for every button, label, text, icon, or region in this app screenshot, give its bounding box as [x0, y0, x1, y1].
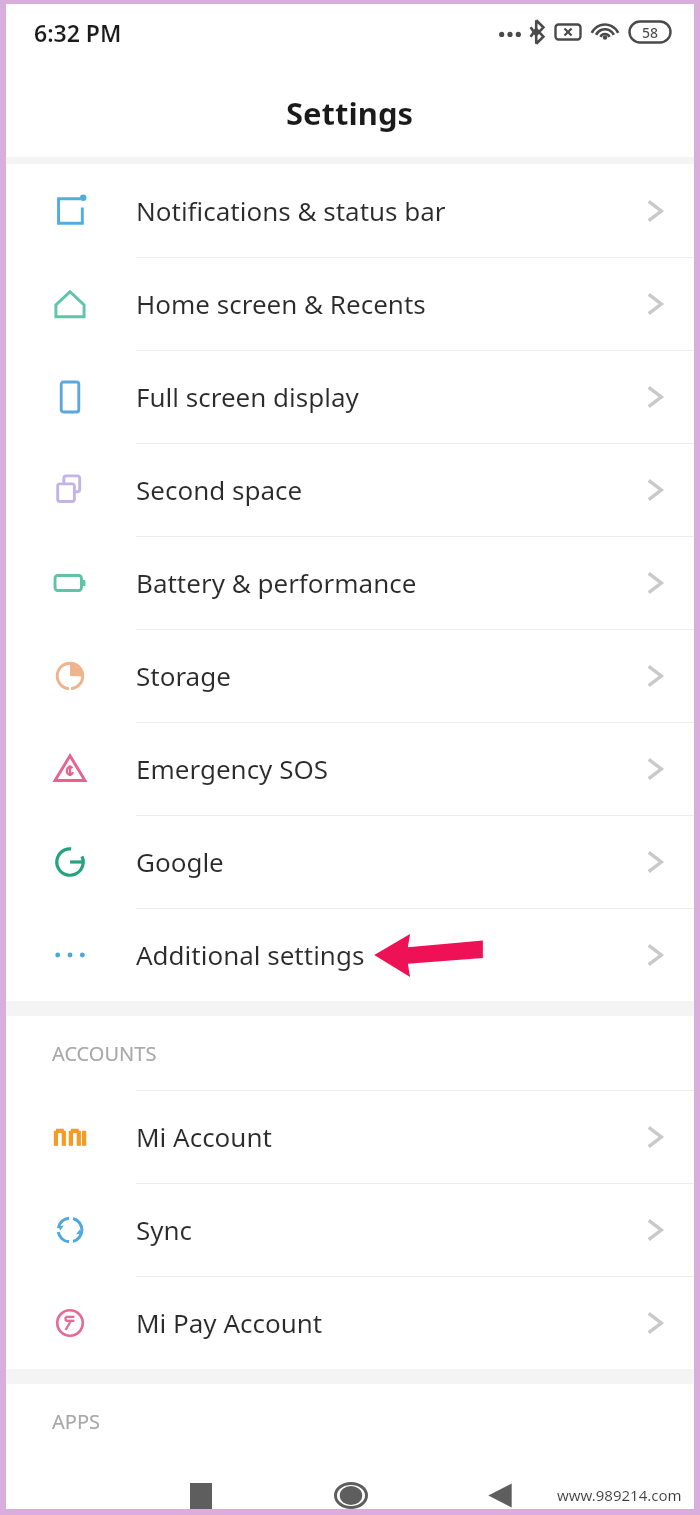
- button[interactable]: Home: [276, 1482, 425, 1509]
- button[interactable]: Notifications & status bar: [6, 164, 694, 257]
- staticText: Battery & performance: [136, 565, 417, 600]
- staticText: Emergency SOS: [136, 751, 328, 786]
- staticText: Home screen & Recents: [136, 286, 426, 321]
- staticText: Sync: [136, 1212, 193, 1247]
- staticText: Settings: [286, 92, 414, 134]
- staticText: APPS: [52, 1408, 100, 1435]
- button[interactable]: Battery & performance: [6, 536, 694, 629]
- button[interactable]: Emergency SOS: [6, 722, 694, 815]
- button[interactable]: Storage: [6, 629, 694, 722]
- staticText: Full screen display: [136, 379, 359, 414]
- staticText: Notifications & status bar: [136, 193, 446, 228]
- button[interactable]: Google: [6, 815, 694, 908]
- staticText: Additional settings: [136, 937, 365, 972]
- staticText: Mi Pay Account: [136, 1305, 323, 1340]
- button[interactable]: Back: [425, 1482, 574, 1509]
- staticText: Google: [136, 844, 224, 879]
- staticText: 58: [642, 23, 659, 42]
- button[interactable]: Mi Pay Account: [6, 1276, 694, 1369]
- staticText: Storage: [136, 658, 231, 693]
- button[interactable]: Additional settings: [6, 908, 694, 1001]
- staticText: Mi Account: [136, 1119, 272, 1154]
- staticText: 6:32 PM: [34, 17, 122, 48]
- staticText: ACCOUNTS: [52, 1040, 157, 1067]
- staticText: www.989214.com: [557, 1485, 682, 1505]
- button[interactable]: Full screen display: [6, 350, 694, 443]
- button[interactable]: Home screen & Recents: [6, 257, 694, 350]
- button[interactable]: Mi Account: [6, 1090, 694, 1183]
- button[interactable]: Recents: [126, 1482, 276, 1509]
- button[interactable]: Sync: [6, 1183, 694, 1276]
- button[interactable]: Second space: [6, 443, 694, 536]
- staticText: Second space: [136, 472, 303, 507]
